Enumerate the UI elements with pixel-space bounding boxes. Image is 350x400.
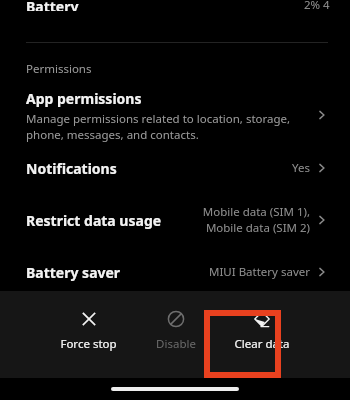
staticText: MIUI Battery saver xyxy=(209,264,310,280)
button[interactable]: App permissions xyxy=(0,87,350,143)
staticText: 2% 4 xyxy=(304,0,330,11)
staticText: Manage permissions related to location, … xyxy=(26,111,291,142)
staticText: Mobile data (SIM 2) xyxy=(205,220,310,236)
button[interactable]: Notifications xyxy=(0,143,350,193)
button[interactable]: Force stop xyxy=(60,303,117,358)
staticText: Clear data xyxy=(234,336,290,352)
staticText: Battery xyxy=(26,0,79,11)
staticText: Permissions xyxy=(26,61,92,77)
staticText: Notifications xyxy=(26,159,117,178)
staticText: Restrict data usage xyxy=(26,211,162,230)
staticText: Yes xyxy=(292,160,310,176)
button[interactable]: Restrict data usage xyxy=(0,193,350,247)
staticText: Battery saver xyxy=(26,263,121,282)
button[interactable]: Battery saver xyxy=(0,247,350,297)
staticText: Mobile data (SIM 1), xyxy=(202,204,310,220)
button[interactable]: Clear data xyxy=(234,303,290,358)
button[interactable]: Disable xyxy=(156,303,196,358)
staticText: App permissions xyxy=(26,89,142,108)
staticText: Disable xyxy=(156,336,196,352)
staticText: Force stop xyxy=(60,336,117,352)
button[interactable]: Battery xyxy=(0,0,350,14)
